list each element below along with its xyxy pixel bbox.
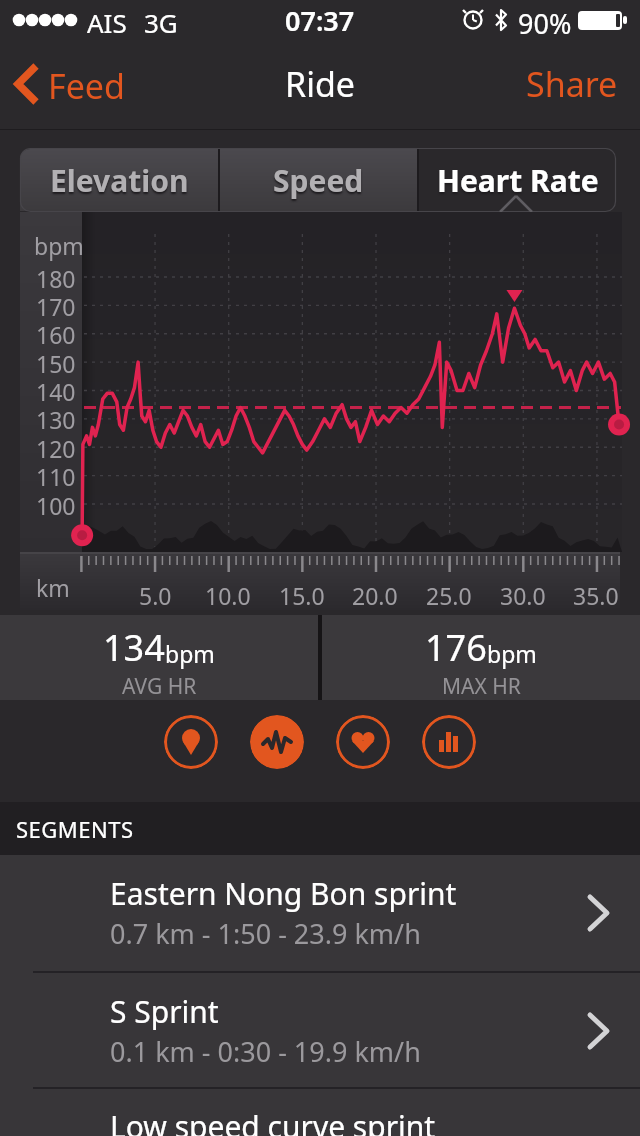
staticText: Elevation [50,160,189,201]
staticText: 150 [36,348,76,376]
button[interactable] [336,715,390,769]
staticText: 100 [36,490,76,518]
staticText: Share [526,61,618,107]
staticText: 15.0 [279,580,325,606]
staticText: km [36,572,70,603]
button[interactable]: S Sprint [0,973,640,1089]
staticText: bpm [487,638,537,669]
button[interactable]: Low speed curve sprint [0,1089,640,1136]
staticText: 0.7 km - 1:50 - 23.9 km/h [110,915,421,952]
staticText: 10.0 [205,580,251,606]
button[interactable]: Eastern Nong Bon sprint [0,855,640,971]
staticText: 35.0 [573,580,619,606]
staticText: 180 [36,263,76,291]
staticText: 176 [425,623,487,672]
staticText: 110 [36,461,76,489]
staticText: MAX HR [442,672,521,700]
staticText: SEGMENTS [16,814,134,844]
button[interactable] [250,715,304,769]
staticText: AVG HR [122,672,197,700]
staticText: S Sprint [110,991,219,1032]
staticText: 130 [36,404,76,432]
staticText: 170 [36,291,76,319]
staticText: 20.0 [352,580,398,606]
staticText: 120 [36,433,76,461]
staticText: bpm [34,230,84,261]
staticText: 160 [36,319,76,347]
staticText: bpm [165,638,215,669]
staticText: 0.1 km - 0:30 - 19.9 km/h [110,1033,421,1070]
staticText: 134 [103,623,165,672]
staticText: Ride [285,61,356,107]
button[interactable]: Heart Rate [419,149,616,211]
button[interactable] [164,715,218,769]
button[interactable] [422,715,476,769]
staticText: Eastern Nong Bon sprint [110,873,457,914]
staticText: Speed [273,160,364,201]
staticText: AIS [87,5,127,40]
staticText: 25.0 [426,580,472,606]
staticText: 3G [144,5,178,40]
staticText: 5.0 [139,580,172,606]
button[interactable]: Feed [4,52,154,116]
button[interactable]: Elevation [20,149,218,211]
staticText: Feed [48,63,125,109]
staticText: 07:37 [285,2,355,39]
staticText: Low speed curve sprint [110,1106,436,1136]
staticText: 90% [518,5,572,42]
staticText: 30.0 [500,580,546,606]
staticText: Heart Rate [437,160,599,201]
button[interactable]: Share [460,52,636,116]
staticText: 140 [36,376,76,404]
button[interactable]: Speed [220,149,417,211]
